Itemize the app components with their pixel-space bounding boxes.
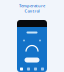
button[interactable]: Rooms	[26, 66, 31, 71]
button[interactable]: Set temperature	[24, 57, 39, 62]
button[interactable]: Settings	[40, 66, 45, 71]
button[interactable]: Decrease	[22, 38, 26, 42]
button[interactable]: Home	[19, 66, 24, 71]
staticText: Temperature	[19, 3, 45, 8]
staticText: Control	[24, 8, 39, 14]
button[interactable]: Schedule	[33, 66, 38, 71]
button[interactable]: Mode	[25, 30, 38, 34]
button[interactable]: Increase	[38, 38, 42, 42]
